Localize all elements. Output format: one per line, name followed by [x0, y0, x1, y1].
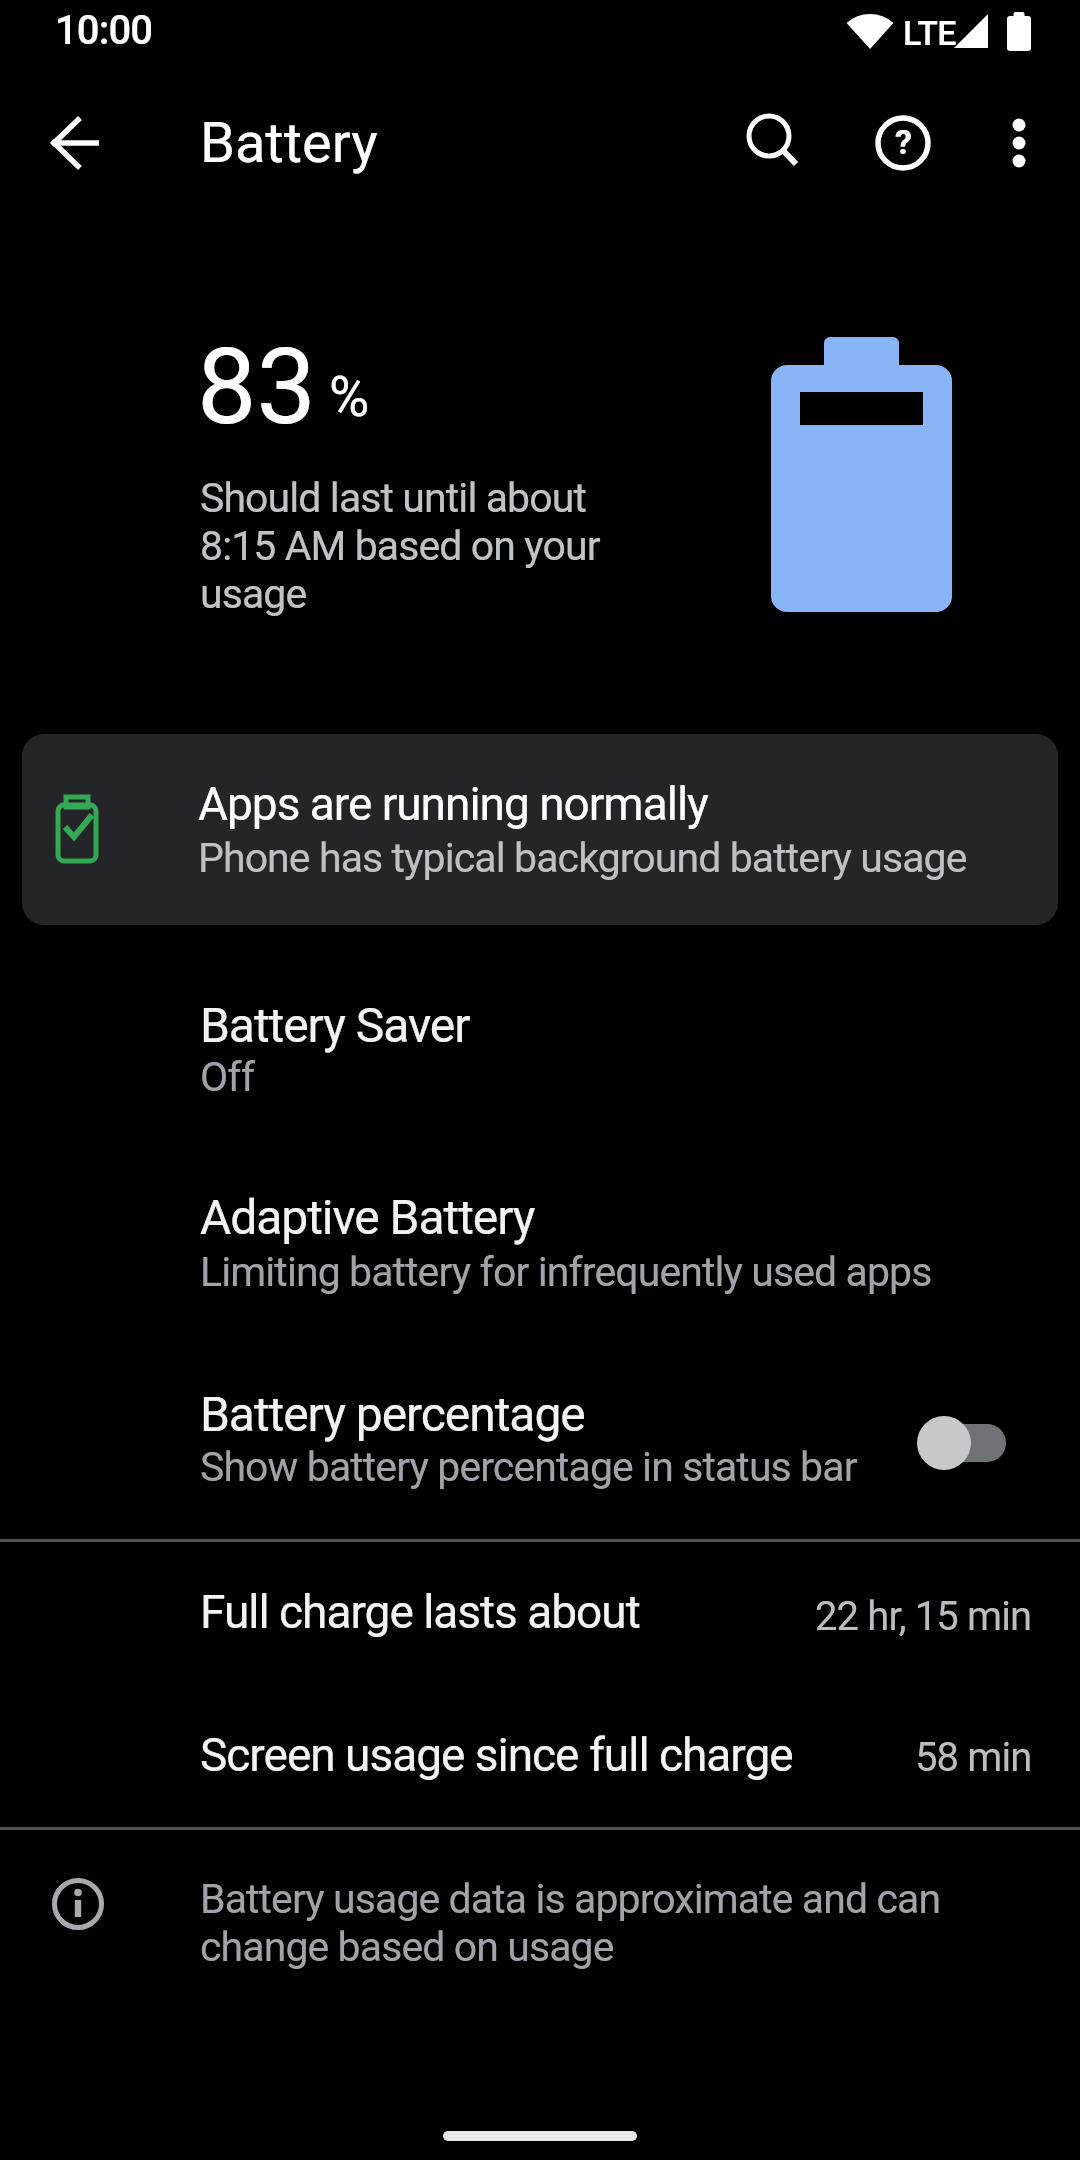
- staticText: LTE: [903, 13, 956, 53]
- staticText: 58 min: [915, 1734, 1032, 1781]
- button[interactable]: Apps are running normally: [22, 734, 1058, 925]
- staticText: Full charge lasts about: [200, 1585, 640, 1639]
- staticText: Apps are running normally: [198, 777, 708, 831]
- button[interactable]: Adaptive Battery: [0, 1158, 1080, 1355]
- button[interactable]: [32, 99, 120, 187]
- staticText: Battery usage data is approximate and ca…: [200, 1875, 941, 1971]
- button[interactable]: Screen usage since full charge: [0, 1685, 1080, 1826]
- staticText: 22 hr, 15 min: [815, 1593, 1032, 1640]
- staticText: Limiting battery for infrequently used a…: [200, 1248, 932, 1296]
- staticText: Show battery percentage in status bar: [200, 1443, 857, 1491]
- button[interactable]: [975, 99, 1063, 187]
- staticText: 10:00: [55, 7, 153, 54]
- staticText: 83: [197, 325, 317, 449]
- button[interactable]: Full charge lasts about: [0, 1542, 1080, 1685]
- button[interactable]: [726, 99, 814, 187]
- button[interactable]: [922, 1416, 1006, 1470]
- staticText: Screen usage since full charge: [200, 1728, 793, 1782]
- button[interactable]: ?: [859, 99, 947, 187]
- staticText: Off: [200, 1053, 255, 1101]
- staticText: Should last until about 8:15 AM based on…: [200, 474, 600, 618]
- staticText: ?: [895, 122, 912, 162]
- staticText: %: [329, 365, 370, 429]
- staticText: Adaptive Battery: [200, 1189, 535, 1245]
- button[interactable]: Battery percentage: [0, 1355, 1080, 1539]
- staticText: Battery: [200, 110, 378, 176]
- staticText: Battery percentage: [200, 1386, 585, 1442]
- staticText: Phone has typical background battery usa…: [198, 834, 967, 882]
- staticText: Battery Saver: [200, 997, 470, 1053]
- button[interactable]: Battery Saver: [0, 960, 1080, 1158]
